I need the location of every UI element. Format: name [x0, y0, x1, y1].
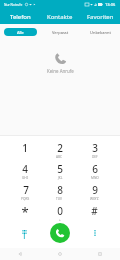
- staticText: Alle: [17, 30, 24, 35]
- button[interactable]: #: [77, 203, 112, 224]
- staticText: GHI: [22, 176, 28, 180]
- button[interactable]: 8: [42, 182, 77, 203]
- staticText: Verpasst: [52, 30, 69, 35]
- staticText: MNO: [91, 176, 99, 180]
- staticText: 5: [57, 162, 63, 176]
- staticText: ABC: [56, 155, 63, 159]
- staticText: 0: [57, 204, 63, 218]
- staticText: Kontakte: [47, 13, 73, 21]
- staticText: Keine Anrufe: [47, 68, 74, 74]
- staticText: 1: [22, 141, 28, 155]
- staticText: Unbekannt: [90, 30, 111, 35]
- staticText: JKL: [58, 176, 63, 180]
- button[interactable]: Verpasst: [44, 28, 77, 36]
- button[interactable]: Unbekannt: [84, 28, 117, 36]
- button[interactable]: Favoriten: [80, 9, 120, 24]
- staticText: Nur Notrufe: [4, 3, 23, 7]
- staticText: DEF: [92, 155, 98, 159]
- staticText: 6: [92, 162, 98, 176]
- button[interactable]: Back: [0, 248, 40, 260]
- button[interactable]: 2: [42, 140, 77, 161]
- button[interactable]: 1: [8, 140, 42, 161]
- button[interactable]: 0: [42, 203, 77, 224]
- button[interactable]: Home: [40, 248, 80, 260]
- staticText: Telefon: [10, 13, 31, 21]
- staticText: 8: [57, 183, 63, 197]
- staticText: #: [91, 204, 98, 218]
- button[interactable]: Telefon: [0, 9, 40, 24]
- staticText: 13:06: [105, 2, 116, 7]
- button[interactable]: 4: [8, 161, 42, 182]
- staticText: 4: [22, 162, 28, 176]
- staticText: Favoriten: [87, 13, 114, 21]
- button[interactable]: Alle: [4, 28, 37, 36]
- staticText: +: [59, 218, 61, 222]
- staticText: 2: [57, 141, 63, 155]
- staticText: PQRS: [21, 197, 30, 201]
- button[interactable]: 6: [77, 161, 112, 182]
- staticText: *: [21, 203, 29, 221]
- staticText: 9: [92, 183, 98, 197]
- button[interactable]: 7: [8, 182, 42, 203]
- button[interactable]: More options: [86, 224, 104, 242]
- button[interactable]: *: [8, 203, 42, 224]
- button[interactable]: Kontakte: [40, 9, 80, 24]
- button[interactable]: 3: [77, 140, 112, 161]
- button[interactable]: Call: [50, 223, 70, 243]
- staticText: 7: [23, 183, 29, 197]
- button[interactable]: Recent apps: [80, 248, 120, 260]
- staticText: 3: [92, 141, 98, 155]
- staticText: WXYZ: [90, 197, 99, 201]
- staticText: TUV: [56, 197, 63, 201]
- button[interactable]: 9: [77, 182, 112, 203]
- button[interactable]: Keypad: [15, 225, 33, 243]
- button[interactable]: 5: [42, 161, 77, 182]
